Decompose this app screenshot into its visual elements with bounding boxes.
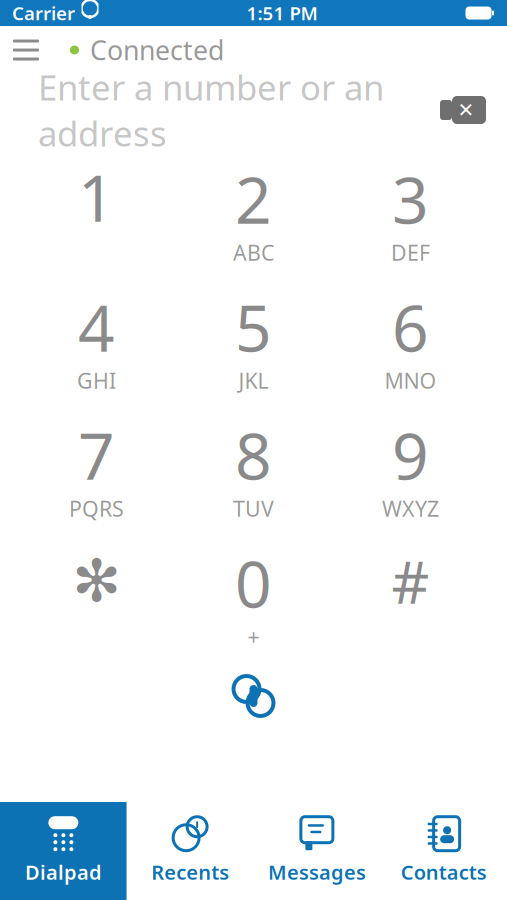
button[interactable]: Delete <box>435 88 491 132</box>
button[interactable]: 4 <box>18 272 175 400</box>
staticText: + <box>247 622 259 651</box>
staticText: 7 <box>78 412 115 497</box>
staticText: Connected <box>90 32 224 68</box>
staticText: JKL <box>238 366 268 395</box>
staticText: 3 <box>392 156 429 241</box>
button[interactable]: 3 <box>332 144 489 272</box>
staticText: ✻ <box>72 548 121 614</box>
staticText: # <box>391 542 429 620</box>
button[interactable]: 8 <box>175 400 332 528</box>
staticText: PQRS <box>69 494 124 523</box>
staticText: 6 <box>392 284 429 369</box>
staticText: Contacts <box>401 859 487 885</box>
button[interactable]: Menu <box>4 28 48 72</box>
button[interactable]: Recents <box>127 802 254 900</box>
button[interactable]: # <box>332 528 489 656</box>
staticText: TUV <box>233 494 274 523</box>
button[interactable]: 6 <box>332 272 489 400</box>
staticText: 0 <box>235 540 272 625</box>
staticText: Messages <box>268 859 366 885</box>
button[interactable]: Messages <box>253 802 380 900</box>
button[interactable]: Call <box>208 660 298 732</box>
staticText: 8 <box>235 412 272 497</box>
staticText: DEF <box>391 238 430 267</box>
staticText: 2 <box>235 156 272 241</box>
button[interactable]: Contacts <box>380 802 507 900</box>
button[interactable]: 1 <box>18 144 175 272</box>
staticText: Recents <box>151 859 229 885</box>
staticText: ✕ <box>457 99 474 121</box>
staticText: 1:51 PM <box>246 1 317 25</box>
button[interactable]: 7 <box>18 400 175 528</box>
staticText: 1 <box>78 154 115 239</box>
button[interactable]: 0 <box>175 528 332 656</box>
staticText: Dialpad <box>25 859 102 885</box>
staticText: MNO <box>384 366 436 395</box>
button[interactable]: 9 <box>332 400 489 528</box>
button[interactable]: Dialpad <box>0 802 127 900</box>
staticText: GHI <box>77 366 116 395</box>
staticText: 5 <box>235 284 272 369</box>
button[interactable]: 2 <box>175 144 332 272</box>
staticText: Enter a number or an address <box>38 64 384 156</box>
staticText: 9 <box>392 412 429 497</box>
staticText: WXYZ <box>382 494 439 523</box>
button[interactable]: 5 <box>175 272 332 400</box>
staticText: 4 <box>78 284 115 369</box>
staticText: Carrier <box>12 1 75 25</box>
button[interactable]: ✻ <box>18 528 175 656</box>
staticText: ABC <box>233 238 274 267</box>
